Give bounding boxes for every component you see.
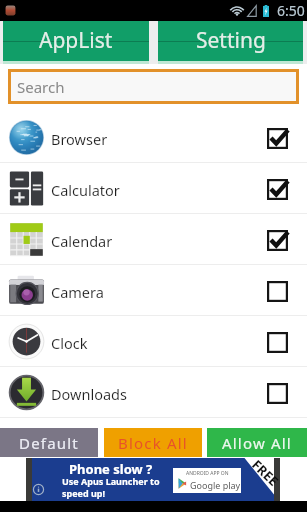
staticText: 6:50 (277, 1, 305, 20)
staticText: ANDROID APP ON (186, 470, 229, 477)
staticText: Setting (196, 26, 266, 55)
button[interactable]: Search (8, 69, 299, 104)
staticText: Google play (190, 479, 241, 491)
button[interactable]: Clock (0, 316, 307, 367)
staticText: Calendar (51, 231, 113, 251)
staticText: Allow All (222, 433, 292, 453)
button[interactable]: Camera (0, 265, 307, 316)
button[interactable]: Allow All (207, 428, 307, 457)
staticText: AppList (39, 26, 113, 55)
staticText: Browser (51, 129, 108, 149)
button[interactable]: Downloads (0, 367, 307, 418)
button[interactable]: Calculator (0, 163, 307, 214)
button[interactable]: Block All (104, 428, 202, 457)
staticText: Downloads (51, 384, 127, 404)
staticText: FREE (248, 456, 283, 490)
staticText: Block All (118, 433, 188, 453)
button[interactable]: Browser (0, 112, 307, 163)
button[interactable]: Default (0, 428, 98, 457)
button[interactable]: Calendar (0, 214, 307, 265)
button[interactable]: Setting (158, 21, 303, 64)
staticText: Calculator (51, 180, 120, 200)
staticText: Use Apus Launcher to (62, 475, 160, 487)
staticText: Phone slow ? (69, 460, 153, 478)
button[interactable]: AppList (3, 21, 149, 64)
staticText: Camera (51, 282, 104, 302)
staticText: Default (19, 433, 79, 453)
staticText: Search (17, 77, 65, 97)
button[interactable]: FREE (26, 458, 280, 501)
staticText: Clock (51, 333, 88, 353)
staticText: speed up! (62, 487, 106, 499)
